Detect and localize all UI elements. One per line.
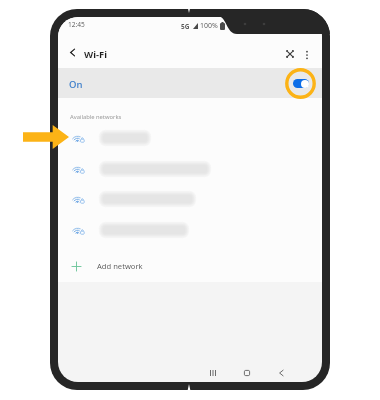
- button[interactable]: Recent apps: [203, 363, 223, 382]
- staticText: 12:45: [68, 20, 85, 29]
- staticText: 100%: [200, 21, 218, 31]
- button[interactable]: [58, 215, 322, 245]
- button[interactable]: More options: [298, 46, 316, 64]
- staticText: Add network: [97, 261, 143, 271]
- staticText: On: [69, 78, 83, 91]
- button[interactable]: [58, 184, 322, 214]
- staticText: Wi-Fi: [84, 48, 108, 61]
- button[interactable]: On: [58, 68, 322, 98]
- button[interactable]: Wi-Fi on: [285, 68, 316, 99]
- button[interactable]: Home: [237, 363, 257, 382]
- staticText: Available networks: [70, 113, 122, 121]
- button[interactable]: [58, 123, 322, 153]
- button[interactable]: Navigate up: [64, 44, 81, 61]
- button[interactable]: [58, 154, 322, 184]
- staticText: 5G: [181, 22, 190, 31]
- button[interactable]: Scan QR code: [281, 45, 299, 63]
- button[interactable]: Add network: [58, 253, 322, 279]
- button[interactable]: Back: [271, 363, 291, 382]
